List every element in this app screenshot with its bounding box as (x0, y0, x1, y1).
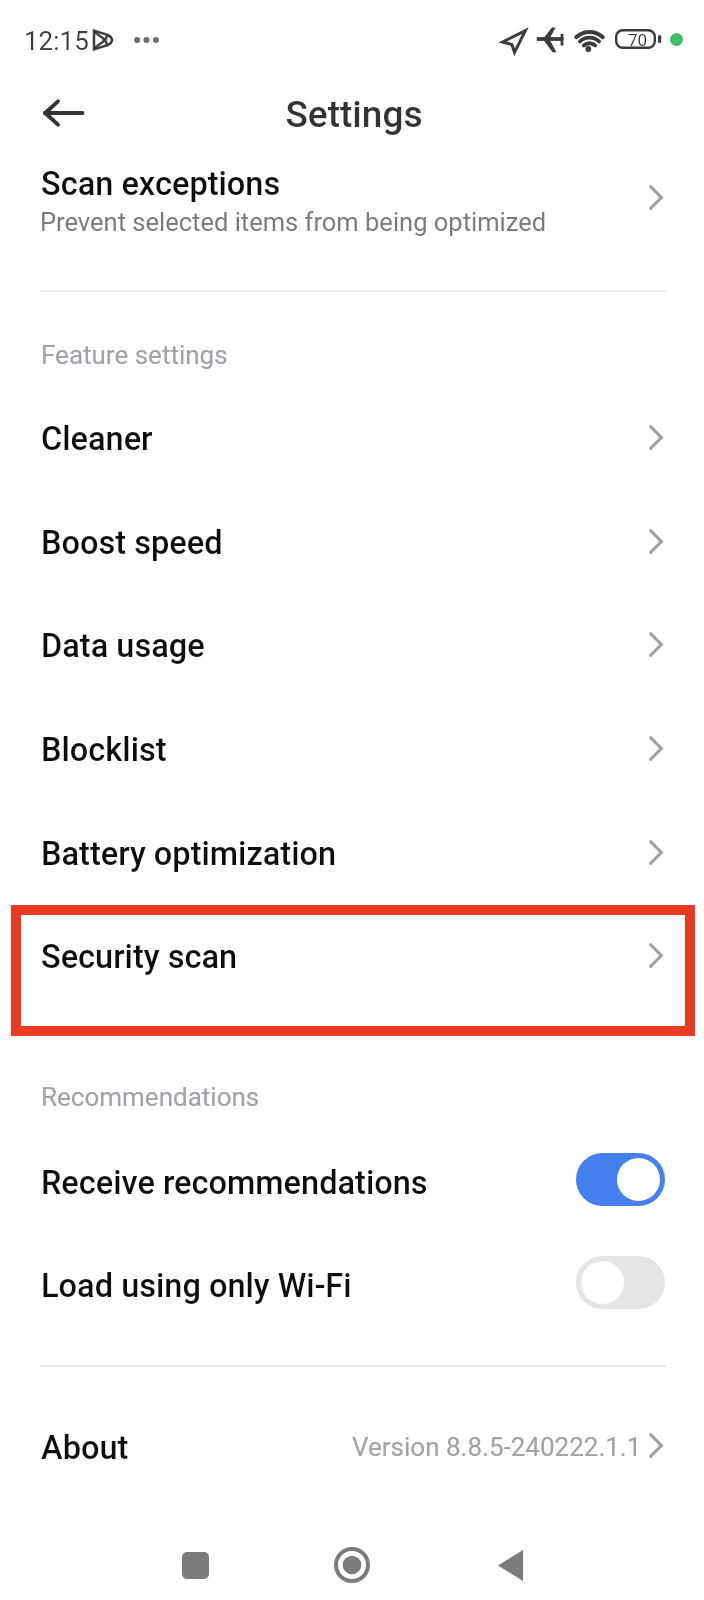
button[interactable]: Back (432, 1530, 588, 1600)
staticText: Settings (2, 93, 704, 136)
button[interactable]: Scan exceptions (0, 150, 704, 270)
button[interactable]: Data usage (0, 604, 704, 708)
staticText: Recommendations (41, 1082, 260, 1112)
staticText: Receive recommendations (41, 1164, 428, 1202)
staticText: Boost speed (41, 524, 223, 562)
staticText: 70 (628, 30, 648, 50)
staticText: Battery optimization (41, 835, 337, 873)
button[interactable]: Boost speed (0, 501, 704, 605)
staticText: About (41, 1429, 129, 1467)
button[interactable]: Cleaner (0, 397, 704, 501)
staticText: Blocklist (41, 731, 167, 769)
button[interactable]: Back (28, 78, 98, 148)
staticText: Cleaner (41, 420, 153, 458)
button[interactable]: Blocklist (0, 708, 704, 812)
staticText: Version 8.8.5-240222.1.1 (352, 1432, 642, 1462)
button[interactable]: Receive recommendations (576, 1153, 665, 1206)
staticText: Load using only Wi-Fi (41, 1267, 352, 1305)
button[interactable]: Home (274, 1530, 430, 1600)
button[interactable]: About (0, 1404, 704, 1508)
button[interactable]: Load using only Wi-Fi (0, 1244, 704, 1348)
staticText: Scan exceptions (41, 165, 281, 203)
staticText: Security scan (41, 938, 238, 976)
staticText: Data usage (41, 627, 205, 665)
staticText: 12:15 (24, 26, 89, 56)
button[interactable]: Recent apps (117, 1530, 273, 1600)
button[interactable]: Battery optimization (0, 812, 704, 916)
button[interactable]: Receive recommendations (0, 1141, 704, 1245)
staticText: Feature settings (41, 340, 228, 370)
button[interactable]: Load using only Wi-Fi (576, 1256, 665, 1309)
button[interactable]: Security scan (0, 915, 704, 1019)
staticText: Prevent selected items from being optimi… (40, 207, 547, 237)
